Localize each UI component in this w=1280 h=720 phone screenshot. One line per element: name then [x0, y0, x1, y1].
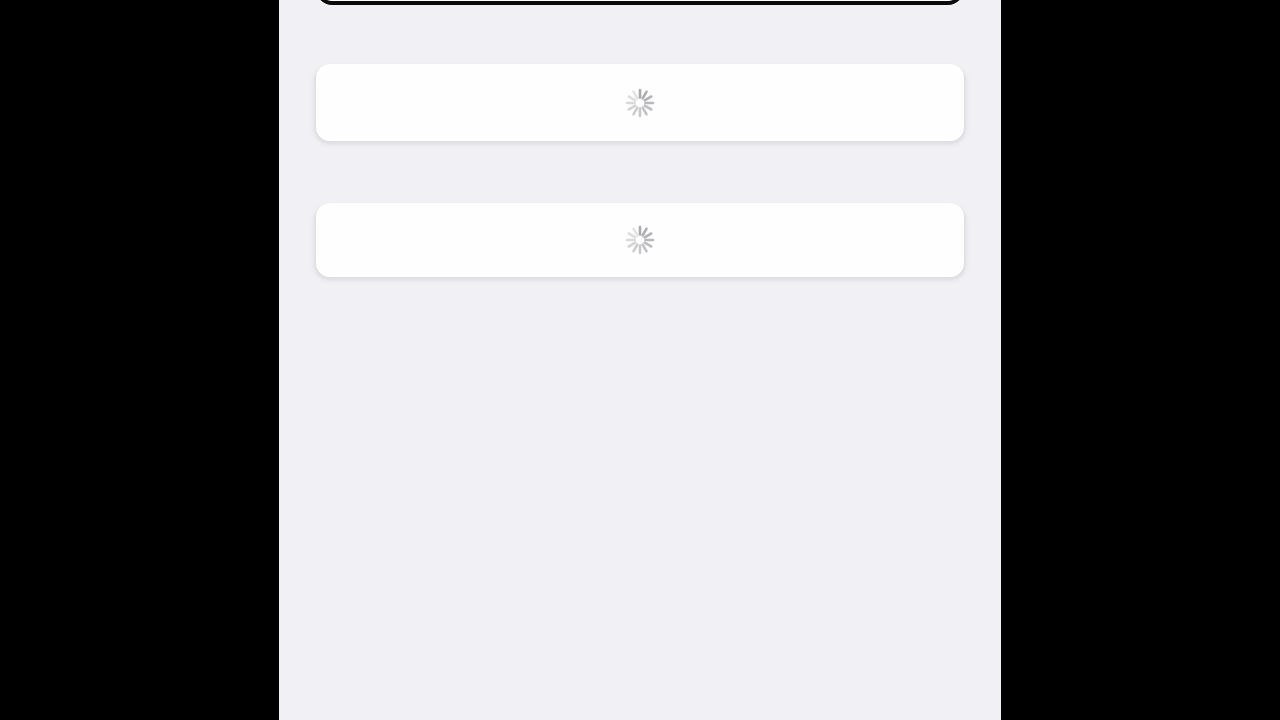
button[interactable]: Loading content — [316, 203, 964, 277]
button[interactable]: Loading content — [316, 64, 964, 141]
